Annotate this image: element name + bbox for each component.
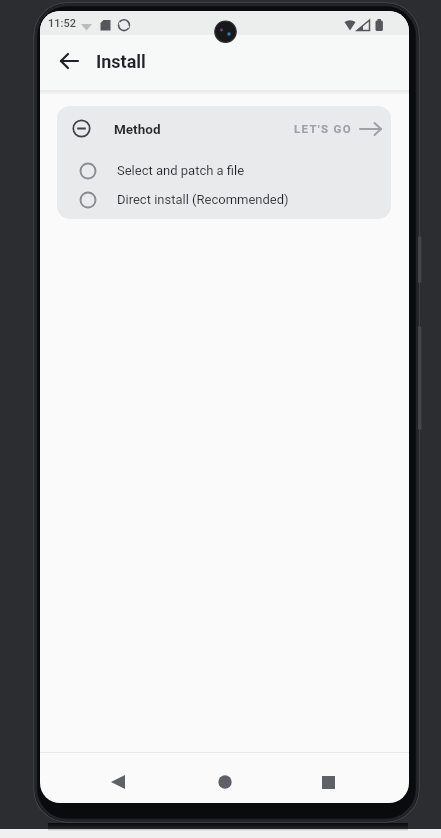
button[interactable]: Select and patch a file [57,156,391,185]
staticText: Method [114,121,161,137]
button[interactable]: Method [57,106,391,151]
staticText: Install [96,51,146,72]
staticText: LET'S GO [294,122,352,135]
staticText: Select and patch a file [117,163,245,178]
button[interactable] [54,45,86,77]
button[interactable] [104,768,132,796]
button[interactable] [314,768,342,796]
button[interactable] [211,768,239,796]
staticText: 11:52 [48,17,76,30]
button[interactable]: Direct install (Recommended) [57,185,391,214]
staticText: Direct install (Recommended) [117,192,289,207]
